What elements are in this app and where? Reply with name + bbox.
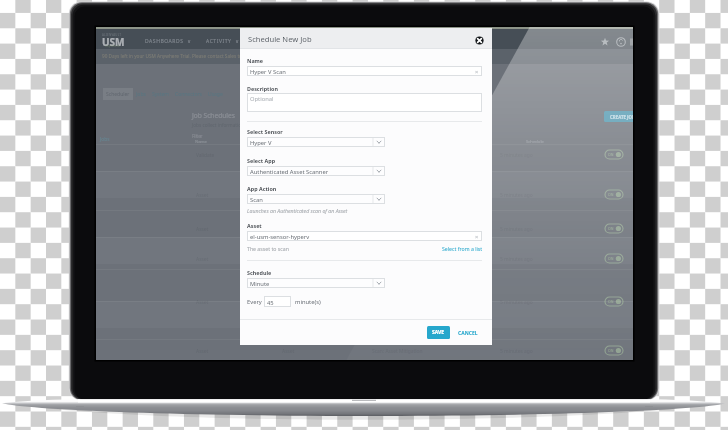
button[interactable]: Optional: [247, 93, 482, 112]
staticText: ALIENVAULT: [102, 33, 122, 37]
button[interactable]: Favourites: [600, 37, 610, 47]
staticText: Description: [247, 85, 278, 92]
staticText: Name: [247, 57, 264, 64]
staticText: Scan: Asset Mitigation: [372, 226, 423, 233]
button[interactable]: Enabled toggle: [605, 297, 623, 306]
staticText: Connectors: [175, 91, 202, 98]
staticText: Select App: [247, 157, 276, 164]
staticText: Schedule: [247, 269, 272, 276]
staticText: Asset Scan: [282, 256, 307, 263]
staticText: Usage: [208, 91, 223, 98]
button[interactable]: Schedule New Job: [240, 28, 492, 49]
staticText: App Action: [247, 185, 277, 192]
staticText: ON: [608, 226, 614, 231]
staticText: ON: [608, 152, 614, 157]
button[interactable]: Hyper V Scan: [247, 66, 482, 76]
button[interactable]: Scan: [247, 194, 385, 204]
button[interactable]: Hyper V: [247, 137, 385, 147]
staticText: Select from a list: [442, 245, 483, 252]
staticText: Authenticated Asset Scanner: [250, 168, 329, 176]
button[interactable]: Authenticated Asset Scanner: [247, 166, 385, 176]
staticText: Select Sensor: [247, 128, 283, 135]
button[interactable]: ACTIVITY ∨: [206, 38, 240, 45]
button[interactable]: Enabled toggle: [605, 346, 623, 355]
button[interactable]: Jobs: [136, 88, 146, 100]
staticText: Scan: Asset Mitigation: [372, 256, 423, 263]
staticText: Jobs: [136, 91, 146, 98]
staticText: CREATE JOB: [610, 114, 633, 120]
button[interactable]: ENVIRONMENT ∨: [259, 38, 309, 45]
button[interactable]: CREATE JOB: [604, 111, 633, 122]
staticText: Jobs collect information: [192, 122, 244, 128]
button[interactable]: Help: [616, 37, 626, 47]
button[interactable]: Jobs: [100, 136, 110, 143]
staticText: The asset to scan: [247, 245, 289, 252]
button[interactable]: el-usm-sensor-hyperv: [247, 231, 482, 241]
staticText: 45: [267, 299, 274, 307]
button[interactable]: Select from a list: [442, 245, 483, 252]
staticText: Every: [247, 298, 262, 306]
staticText: 5 minutes ago: [500, 299, 533, 306]
staticText: Schedule New Job: [248, 34, 312, 44]
staticText: minute(s): [295, 298, 321, 306]
button[interactable]: Minute: [247, 278, 385, 288]
staticText: CANCEL: [458, 330, 478, 337]
button[interactable]: Enabled toggle: [605, 224, 623, 233]
staticText: Asset: [247, 222, 262, 229]
staticText: 90 Days left in your USM Anywhere Trial.…: [102, 53, 265, 59]
staticText: ON: [608, 256, 614, 261]
staticText: Name: [195, 139, 207, 145]
button[interactable]: Account menu: [627, 37, 633, 47]
staticText: ×: [475, 68, 479, 76]
staticText: ON: [608, 192, 614, 197]
staticText: Asset Scan: [282, 299, 307, 306]
button[interactable]: 45: [264, 296, 291, 307]
button[interactable]: Usage: [208, 88, 223, 100]
staticText: anywhere: [105, 44, 120, 48]
staticText: Scheduler: [106, 91, 130, 98]
staticText: ON: [608, 348, 614, 353]
button[interactable]: CANCEL: [458, 330, 478, 337]
staticText: Job Schedules: [192, 111, 235, 120]
button[interactable]: Scheduler: [106, 88, 130, 100]
button[interactable]: Connectors: [175, 88, 202, 100]
staticText: Optional: [250, 95, 274, 103]
button[interactable]: System: [152, 88, 169, 100]
staticText: Schedule: [526, 139, 544, 145]
button[interactable]: DASHBOARDS ∨: [145, 38, 192, 45]
staticText: Asset: [196, 299, 209, 306]
button[interactable]: Close dialog: [475, 36, 484, 45]
button[interactable]: SAVE: [427, 326, 450, 339]
staticText: Asset Scan: [282, 226, 307, 233]
staticText: USM: [102, 35, 125, 49]
staticText: Hyper V: [250, 139, 272, 147]
staticText: System: [152, 91, 169, 98]
staticText: Minute: [250, 280, 270, 288]
staticText: Hyper V Scan: [250, 68, 286, 76]
staticText: Scan: Asset Mitigation: [372, 192, 423, 199]
staticText: Filter: [192, 133, 203, 139]
staticText: el-usm-sensor-hyperv: [250, 233, 310, 241]
button[interactable]: Enabled toggle: [605, 150, 623, 159]
staticText: Scan: [250, 196, 263, 204]
button[interactable]: Enabled toggle: [605, 190, 623, 199]
button[interactable]: ALIENVAULT: [96, 29, 633, 49]
staticText: SAVE: [432, 329, 445, 336]
staticText: Asset Scan: [282, 192, 307, 199]
button[interactable]: Enabled toggle: [605, 254, 623, 263]
